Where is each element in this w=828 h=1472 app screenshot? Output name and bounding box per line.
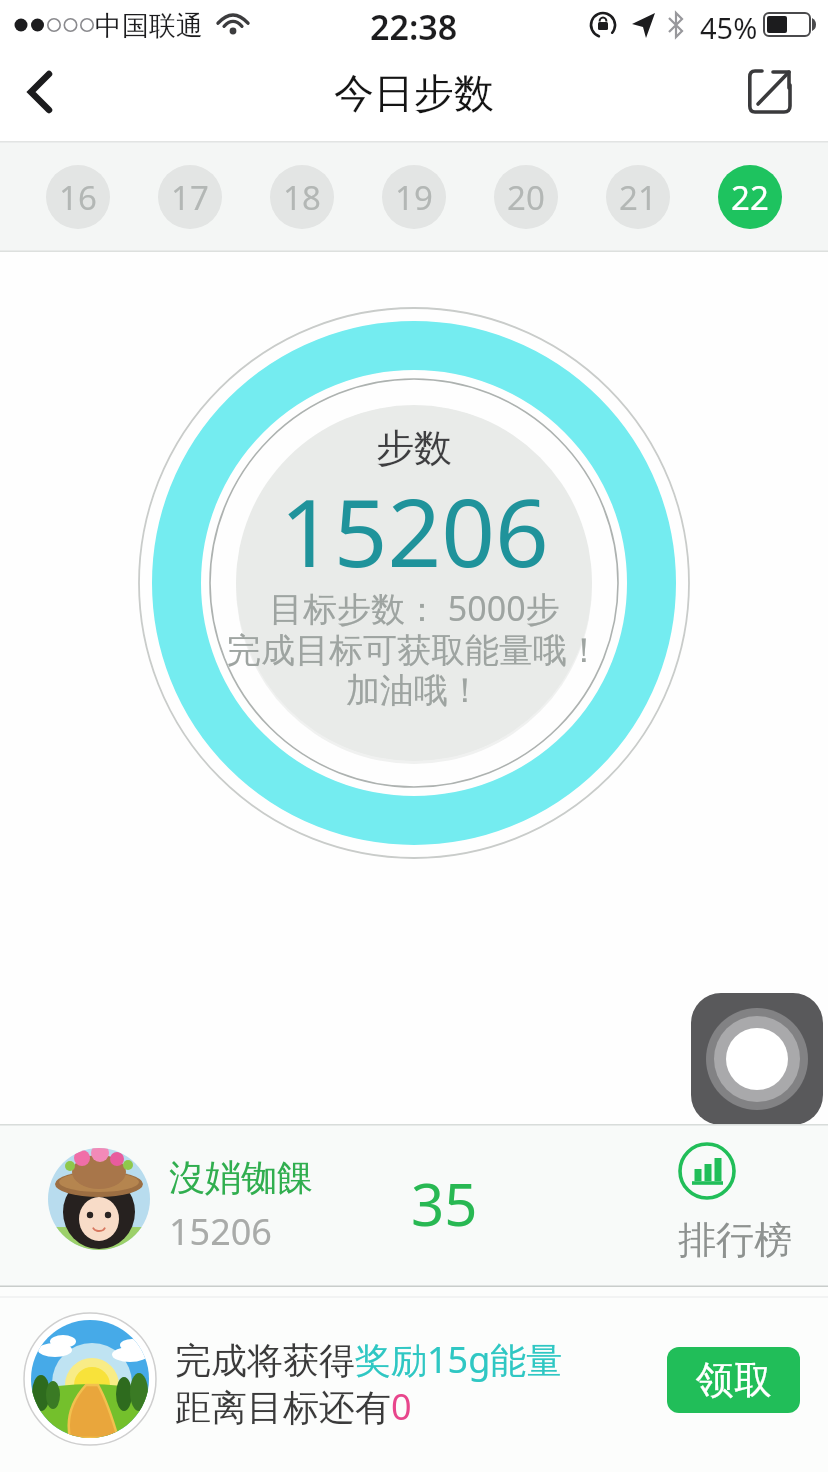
staticText: 22:38: [370, 4, 458, 50]
staticText: 17: [171, 175, 209, 220]
button[interactable]: [691, 993, 823, 1125]
staticText: 领取: [696, 1356, 772, 1404]
button[interactable]: 18: [270, 165, 334, 229]
button[interactable]: [0, 48, 76, 141]
staticText: 20: [507, 175, 545, 220]
button[interactable]: 沒娋铷餜: [0, 1124, 828, 1287]
button[interactable]: 20: [494, 165, 558, 229]
staticText: 22: [731, 175, 769, 220]
staticText: 步数: [376, 424, 452, 472]
staticText: 今日步数: [334, 68, 494, 118]
staticText: 完成目标可获取能量哦！: [227, 629, 601, 672]
staticText: 排行榜: [678, 1216, 792, 1264]
staticText: 中国联通: [95, 9, 203, 43]
button[interactable]: 21: [606, 165, 670, 229]
staticText: 沒娋铷餜: [169, 1155, 313, 1200]
staticText: 15206: [280, 467, 549, 595]
staticText: 21: [619, 175, 657, 220]
button[interactable]: 16: [46, 165, 110, 229]
button[interactable]: [748, 48, 828, 141]
staticText: 15206: [169, 1207, 272, 1256]
staticText: 完成将获得奖励15g能量: [175, 1335, 563, 1384]
staticText: 距离目标还有0: [175, 1382, 412, 1431]
staticText: 35: [411, 1164, 478, 1243]
staticText: 目标步数： 5000步: [269, 585, 560, 631]
staticText: 加油哦！: [346, 669, 482, 712]
staticText: 16: [59, 175, 97, 220]
button[interactable]: 领取: [667, 1347, 800, 1413]
button[interactable]: 22: [718, 165, 782, 229]
button[interactable]: 19: [382, 165, 446, 229]
staticText: 18: [283, 175, 321, 220]
button[interactable]: 17: [158, 165, 222, 229]
staticText: 19: [395, 175, 433, 220]
staticText: 45%: [700, 8, 758, 47]
